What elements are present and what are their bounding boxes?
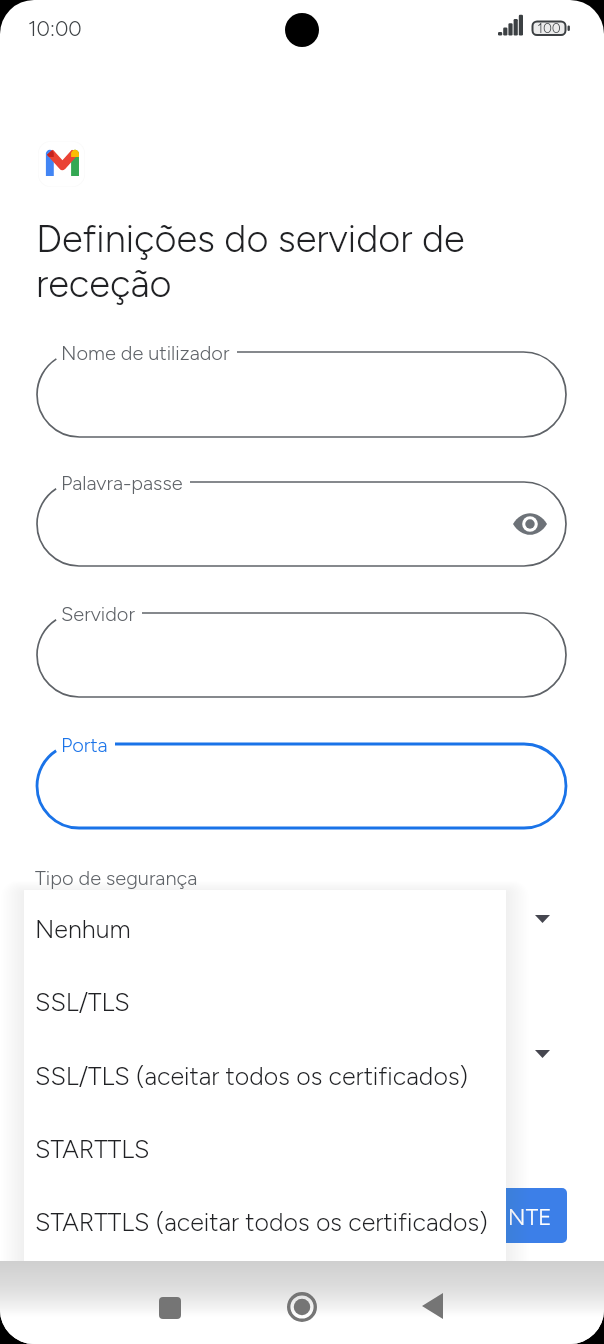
staticText: Servidor: [61, 602, 135, 626]
button[interactable]: [37, 352, 566, 437]
button[interactable]: Mostrar palavra-passe: [505, 499, 555, 549]
staticText: Definições do servidor de receção: [36, 216, 502, 306]
staticText: Porta: [61, 733, 108, 757]
button[interactable]: [37, 744, 566, 828]
staticText: SEGUINTE: [440, 1203, 552, 1231]
staticText: SSL/TLS (aceitar todos os certificados): [35, 1061, 469, 1091]
button[interactable]: Vista geral: [159, 1297, 181, 1319]
button[interactable]: SEGUINTE: [430, 1188, 567, 1243]
button[interactable]: Nenhum: [24, 890, 506, 963]
button[interactable]: SSL/TLS (aceitar todos os certificados): [24, 1037, 506, 1110]
button[interactable]: STARTTLS: [24, 1110, 506, 1183]
staticText: Nome de utilizador: [61, 341, 230, 365]
button[interactable]: SSL/TLS: [24, 963, 506, 1036]
staticText: STARTTLS (aceitar todos os certificados): [35, 1207, 488, 1237]
staticText: Palavra-passe: [61, 471, 183, 495]
button[interactable]: Abrir lista pendente: [518, 1030, 566, 1078]
button[interactable]: Anterior: [422, 1293, 443, 1319]
staticText: SSL/TLS: [35, 987, 130, 1017]
button[interactable]: [37, 482, 566, 566]
staticText: Tipo de segurança: [35, 866, 198, 890]
button[interactable]: STARTTLS (aceitar todos os certificados): [24, 1183, 506, 1256]
staticText: 10:00: [28, 16, 82, 41]
staticText: 100: [532, 20, 566, 37]
staticText: Nenhum: [35, 914, 131, 944]
staticText: STARTTLS: [35, 1134, 150, 1164]
button[interactable]: Abrir lista pendente: [518, 895, 566, 943]
button[interactable]: Início: [287, 1292, 317, 1322]
button[interactable]: [37, 613, 566, 697]
